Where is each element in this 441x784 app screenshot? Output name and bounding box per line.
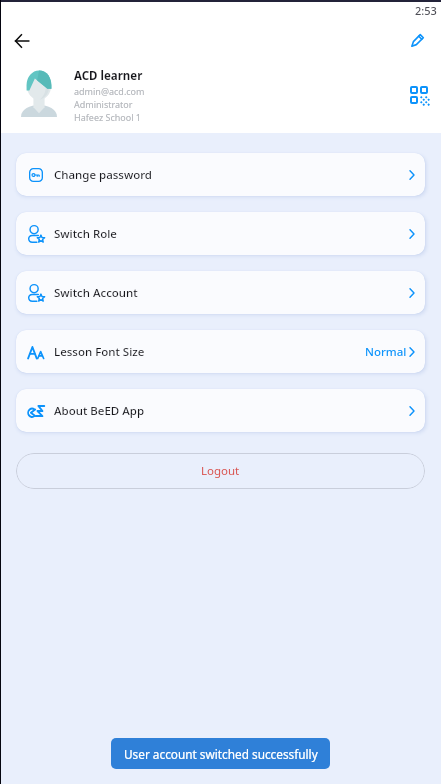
staticText: admin@acd.com: [74, 85, 145, 97]
staticText: About BeED App: [54, 403, 145, 419]
staticText: Lesson Font Size: [54, 344, 145, 360]
staticText: ACD learner: [74, 68, 143, 84]
staticText: 2:53: [415, 3, 437, 18]
staticText: Logout: [201, 463, 240, 479]
button[interactable]: Logout: [16, 453, 425, 489]
staticText: Switch Account: [54, 285, 138, 301]
staticText: Hafeez School 1: [74, 111, 141, 123]
button[interactable]: QR code: [404, 80, 434, 110]
staticText: Change password: [54, 167, 152, 183]
button[interactable]: Edit profile: [403, 25, 433, 55]
staticText: Administrator: [74, 98, 133, 110]
button[interactable]: About BeED App: [16, 389, 425, 432]
button[interactable]: Lesson Font Size: [16, 330, 425, 373]
staticText: User account switched successfully: [124, 746, 318, 762]
button[interactable]: Change password: [16, 153, 425, 196]
staticText: Normal: [365, 344, 407, 360]
button[interactable]: Back: [7, 26, 37, 56]
button[interactable]: Switch Role: [16, 212, 425, 255]
staticText: Switch Role: [54, 226, 117, 242]
button[interactable]: Switch Account: [16, 271, 425, 314]
